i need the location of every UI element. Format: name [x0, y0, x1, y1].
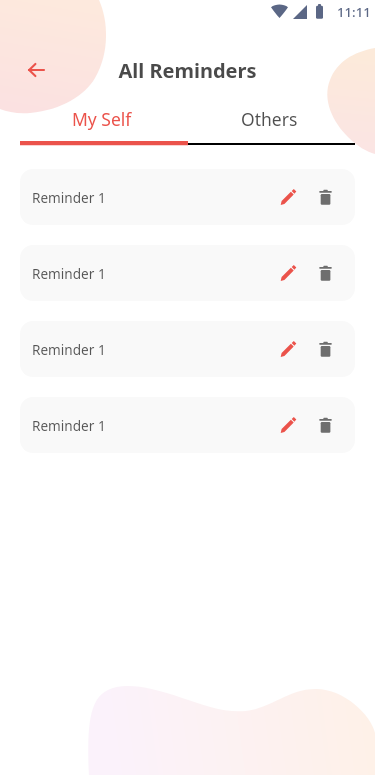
button[interactable]: Back	[20, 54, 52, 86]
button[interactable]: Reminder 1	[20, 245, 355, 301]
button[interactable]: Edit	[274, 335, 302, 363]
button[interactable]: Reminder 1	[20, 169, 355, 225]
staticText: Reminder 1	[32, 416, 106, 435]
button[interactable]: Reminder 1	[20, 397, 355, 453]
button[interactable]: Reminder 1	[20, 321, 355, 377]
button[interactable]: My Self	[0, 98, 187, 140]
staticText: Reminder 1	[32, 264, 106, 283]
staticText: All Reminders	[0, 57, 375, 84]
staticText: Reminder 1	[32, 340, 106, 359]
staticText: Others	[241, 107, 298, 131]
button[interactable]: Edit	[274, 259, 302, 287]
staticText: Reminder 1	[32, 188, 106, 207]
staticText: 11:11	[337, 3, 371, 21]
button[interactable]: Edit	[274, 183, 302, 211]
button[interactable]: Edit	[274, 411, 302, 439]
button[interactable]: Delete	[311, 259, 339, 287]
button[interactable]: Others	[187, 98, 375, 140]
staticText: My Self	[72, 107, 132, 131]
button[interactable]: Delete	[311, 183, 339, 211]
button[interactable]: Delete	[311, 411, 339, 439]
button[interactable]: Delete	[311, 335, 339, 363]
